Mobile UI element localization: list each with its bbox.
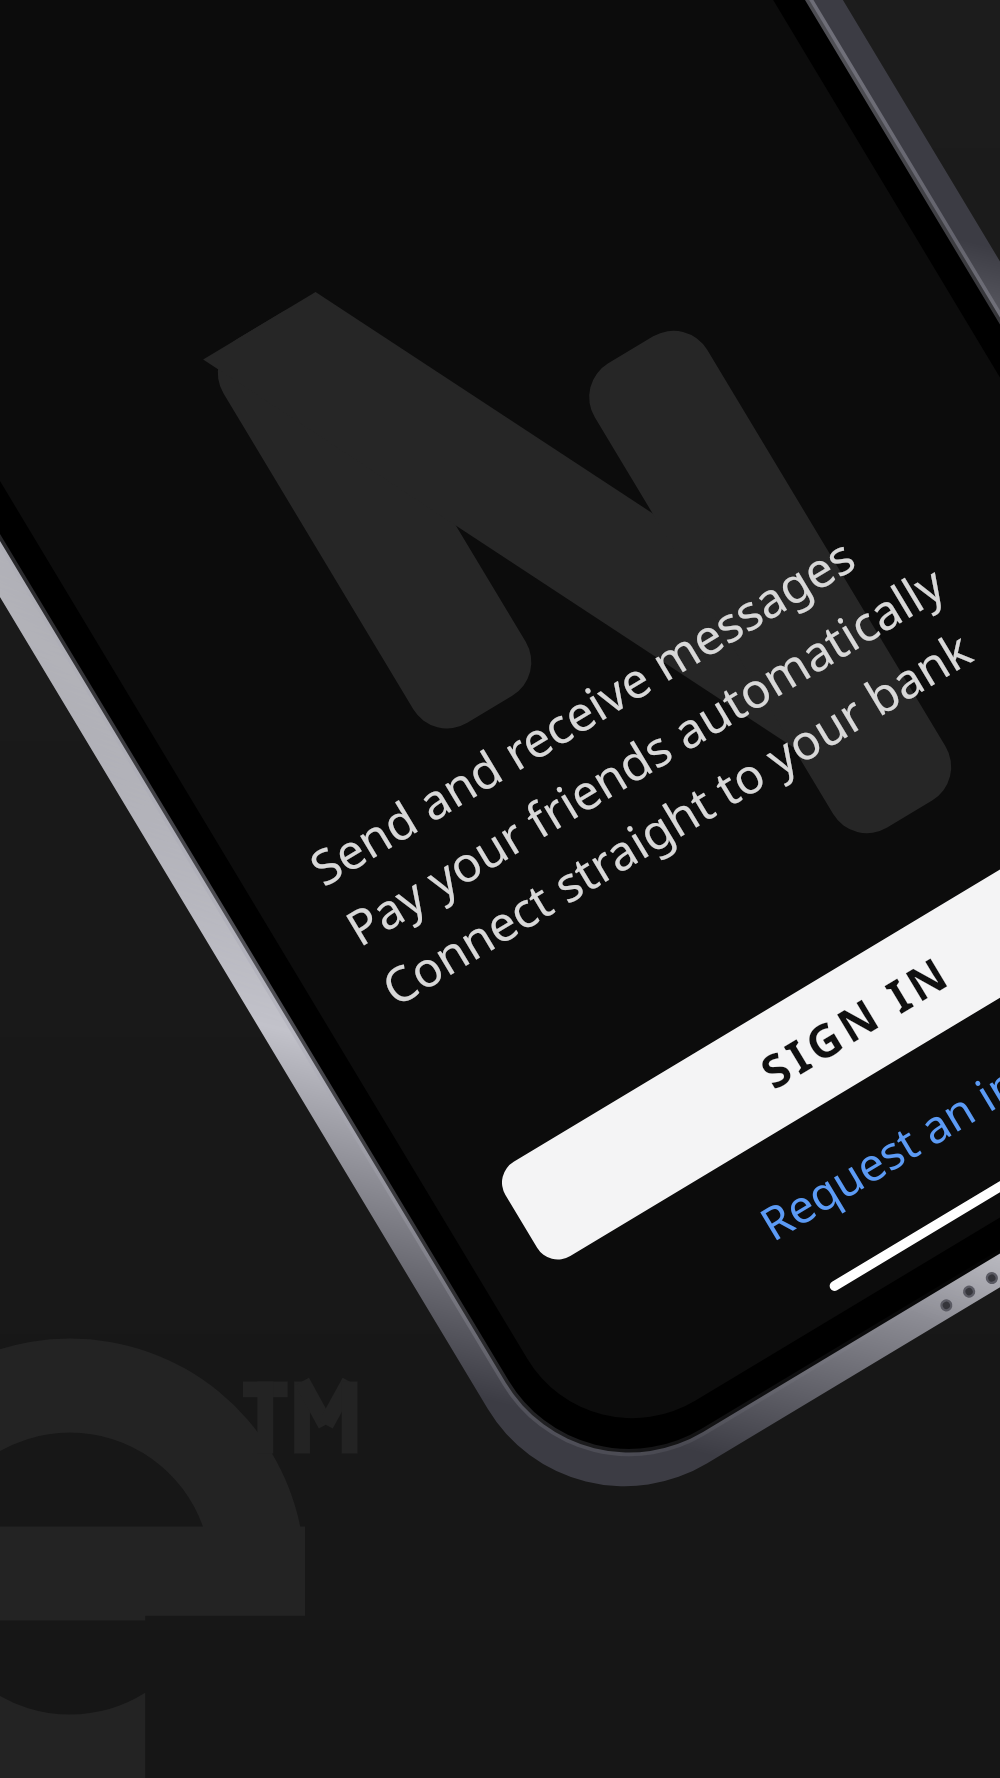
button[interactable]: Sign in screen <box>0 0 1000 1778</box>
